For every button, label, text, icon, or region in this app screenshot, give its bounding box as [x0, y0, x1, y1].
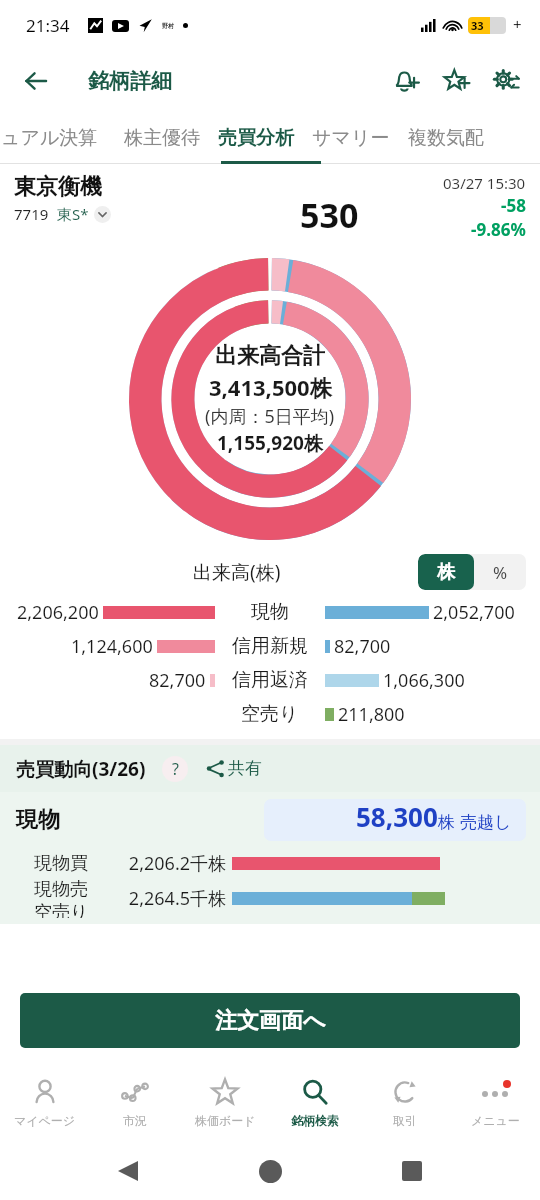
button[interactable]: 複数気配 [399, 112, 493, 164]
button[interactable]: 株価ボード [180, 1060, 270, 1142]
staticText: 03/27 15:30 [443, 173, 526, 193]
button[interactable]: 共有 [202, 754, 266, 783]
staticText: 現物 [251, 600, 289, 624]
staticText: 東京衡機 [14, 173, 102, 201]
staticText: 7719 [14, 204, 49, 224]
button[interactable]: 取引 [360, 1060, 450, 1142]
button[interactable]: % [474, 554, 526, 590]
button[interactable]: Expand market [94, 206, 111, 223]
staticText: 株主優待 [124, 126, 200, 150]
staticText: 58,300 [356, 799, 438, 834]
staticText: 株 [437, 561, 455, 584]
staticText: 出来高合計 [215, 342, 325, 370]
staticText: 現物買 [34, 852, 108, 875]
button[interactable]: Help [162, 756, 188, 782]
staticText: 東S* [57, 204, 89, 224]
button[interactable]: Settings [486, 61, 526, 101]
button[interactable]: サマリー [303, 112, 399, 164]
staticText: 注文画面へ [215, 1007, 326, 1035]
button[interactable]: メニュー [450, 1060, 540, 1142]
button[interactable]: 市況 [90, 1060, 180, 1142]
staticText: 530 [300, 192, 359, 238]
staticText: 2,206.2千株 [116, 851, 226, 876]
button[interactable]: 注文画面へ [20, 993, 520, 1048]
staticText: 銘柄詳細 [88, 68, 172, 94]
staticText: 信用新規 [232, 634, 308, 658]
staticText: 211,800 [338, 702, 405, 727]
staticText: 21:34 [26, 14, 70, 37]
staticText: 現物売 [34, 878, 88, 901]
staticText: 取引 [393, 1113, 417, 1128]
staticText: 2,206,200 [17, 600, 99, 625]
staticText: 3,413,500株 [209, 372, 332, 402]
staticText: 1,155,920株 [217, 430, 323, 456]
staticText: 株 [438, 812, 455, 833]
staticText: 株価ボード [195, 1113, 256, 1128]
staticText: 2,052,700 [433, 600, 515, 625]
staticText: 売越し [460, 812, 512, 833]
staticText: 共有 [228, 758, 262, 779]
staticText: 出来高(株) [193, 559, 281, 585]
staticText: 82,700 [334, 634, 391, 659]
button[interactable]: ュアル決算 [0, 112, 107, 164]
staticText: マイページ [14, 1113, 76, 1128]
staticText: 現物 [16, 806, 60, 834]
staticText: 2,264.5千株 [116, 886, 226, 911]
staticText: 売買動向(3/26) [16, 756, 146, 782]
staticText: -9.86% [471, 218, 526, 241]
staticText: 空売り [241, 702, 299, 726]
staticText: ? [172, 758, 179, 780]
staticText: メニュー [471, 1113, 520, 1128]
button[interactable]: Add to favourites [436, 61, 476, 101]
button[interactable]: 銘柄検索 [270, 1060, 360, 1142]
staticText: 複数気配 [408, 126, 484, 150]
staticText: 82,700 [149, 668, 206, 693]
staticText: 野村 [162, 22, 174, 30]
staticText: % [493, 561, 508, 584]
button[interactable]: マイページ [0, 1060, 90, 1142]
staticText: サマリー [312, 126, 390, 150]
staticText: -58 [501, 194, 526, 217]
staticText: 売買分析 [218, 126, 294, 150]
staticText: (内周：5日平均) [205, 404, 335, 429]
button[interactable]: 売買分析 [209, 112, 303, 164]
button[interactable]: Back [14, 59, 58, 103]
staticText: 空売り [34, 901, 89, 918]
staticText: ュアル決算 [1, 126, 98, 150]
staticText: 1,124,600 [71, 634, 153, 659]
staticText: 信用返済 [232, 668, 308, 692]
staticText: + [513, 14, 522, 34]
button[interactable]: Add alert [386, 61, 426, 101]
staticText: 銘柄検索 [291, 1113, 339, 1128]
staticText: 市況 [123, 1113, 147, 1128]
staticText: 1,066,300 [383, 668, 465, 693]
button[interactable]: 株主優待 [115, 112, 209, 164]
staticText: 33 [471, 18, 484, 33]
button[interactable]: 株 [418, 554, 474, 590]
